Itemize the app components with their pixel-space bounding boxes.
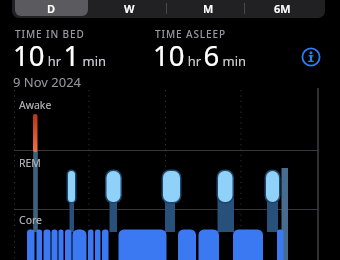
staticText: 6M (274, 1, 291, 16)
staticText: 9 Nov 2024 (13, 73, 82, 91)
staticText: D (47, 1, 56, 16)
staticText: TIME ASLEEP (155, 27, 227, 41)
staticText: TIME IN BED (15, 27, 85, 41)
staticText: 10 hr 6 min (153, 37, 247, 74)
staticText: M (203, 1, 214, 16)
staticText: REM (19, 156, 41, 170)
staticText: Awake (19, 98, 52, 112)
staticText: Core (19, 213, 43, 227)
staticText: 10 hr 1 min (13, 37, 107, 74)
staticText: W (124, 1, 135, 16)
